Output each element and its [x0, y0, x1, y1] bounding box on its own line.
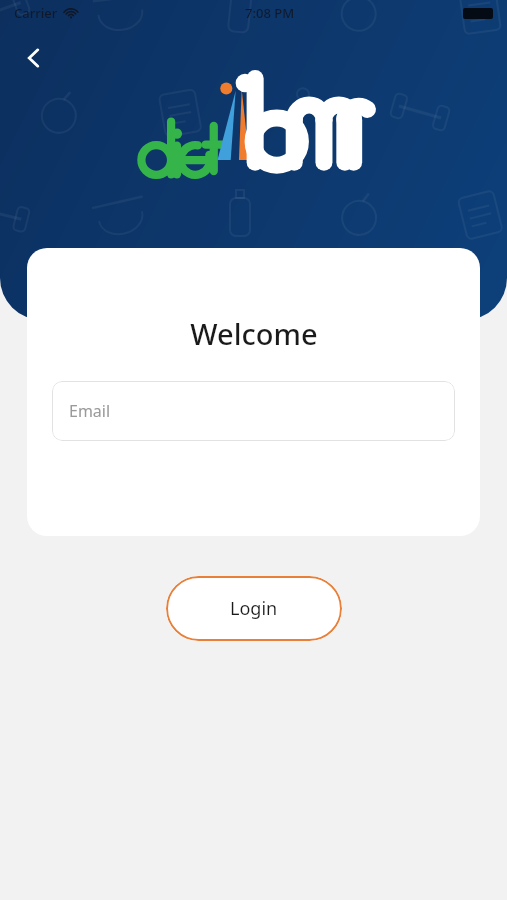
button[interactable]: Login: [166, 576, 342, 641]
button[interactable]: Email: [52, 381, 455, 441]
staticText: Login: [230, 596, 278, 621]
button[interactable]: Back: [12, 36, 56, 80]
staticText: 7:08 PM: [245, 4, 295, 22]
staticText: Email: [69, 400, 111, 422]
staticText: Carrier: [14, 4, 58, 22]
staticText: Welcome: [190, 314, 318, 353]
